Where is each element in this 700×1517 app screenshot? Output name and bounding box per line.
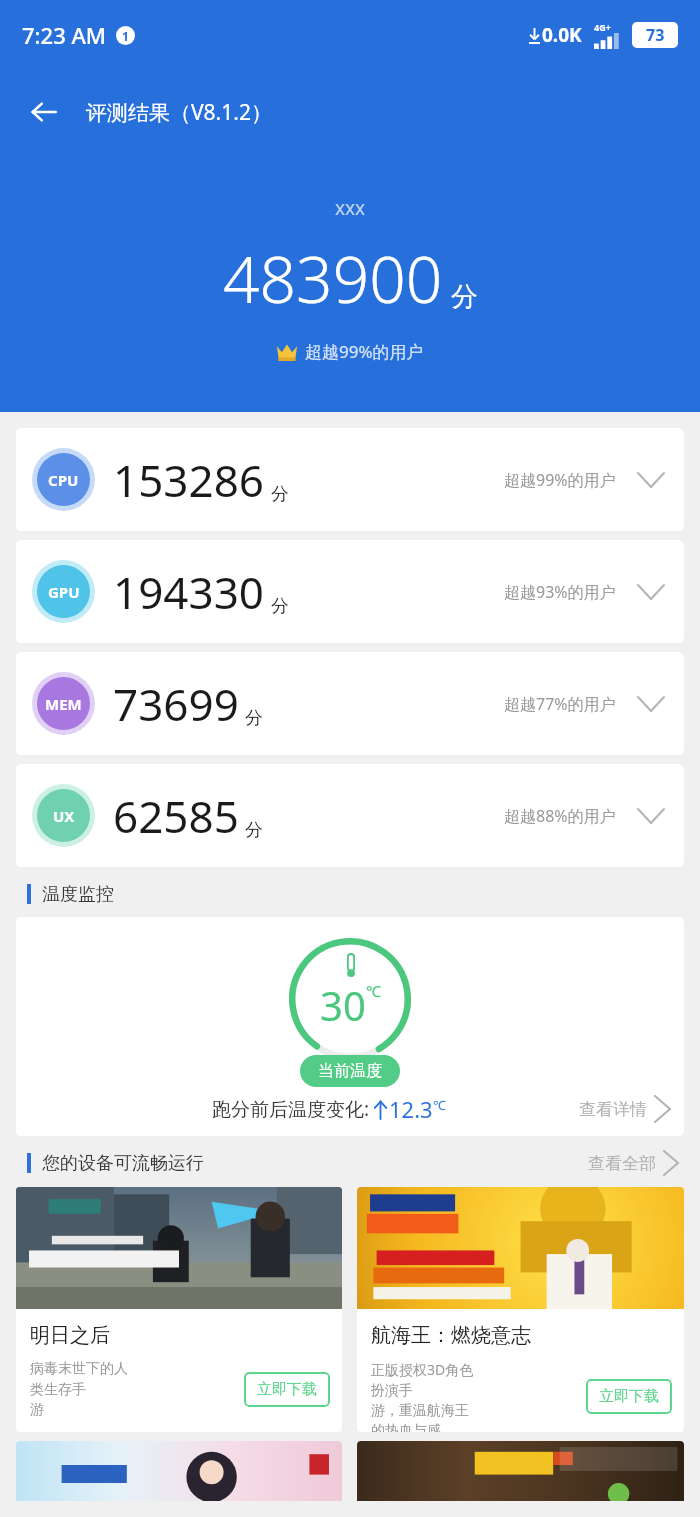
- staticText: 查看详情: [579, 1099, 647, 1120]
- staticText: 分: [245, 707, 263, 730]
- staticText: 分: [451, 280, 478, 314]
- staticText: ℃: [433, 1096, 446, 1114]
- staticText: 当前温度: [318, 1061, 382, 1081]
- staticText: 超越77%的用户: [504, 693, 616, 715]
- staticText: 分: [245, 819, 263, 842]
- button[interactable]: Expand: [634, 687, 668, 721]
- button[interactable]: 立即下载: [586, 1379, 672, 1414]
- staticText: 62585: [113, 786, 239, 846]
- staticText: 正版授权3D角色扮演手 游，重温航海王的热血与感: [371, 1360, 478, 1432]
- staticText: 航海王：燃烧意志: [371, 1323, 531, 1348]
- button[interactable]: CPU: [16, 428, 684, 531]
- staticText: 超越93%的用户: [504, 581, 616, 603]
- button[interactable]: 查看全部: [588, 1151, 678, 1175]
- staticText: 超越99%的用户: [305, 340, 424, 363]
- staticText: 7:23 AM: [22, 20, 107, 50]
- staticText: ℃: [366, 981, 381, 1001]
- button[interactable]: 查看详情: [579, 1096, 670, 1122]
- staticText: 立即下载: [599, 1387, 659, 1406]
- staticText: 跑分前后温度变化:: [212, 1096, 370, 1122]
- button[interactable]: [357, 1441, 684, 1501]
- staticText: CPU: [48, 470, 79, 490]
- button[interactable]: 立即下载: [244, 1372, 330, 1407]
- staticText: xxx: [335, 195, 366, 221]
- button[interactable]: Expand: [634, 799, 668, 833]
- button[interactable]: Expand: [634, 463, 668, 497]
- button[interactable]: GPU: [16, 540, 684, 643]
- staticText: 分: [271, 595, 289, 618]
- staticText: UX: [53, 806, 75, 826]
- staticText: 483900: [223, 235, 443, 322]
- staticText: 病毒末世下的人类生存手 游: [30, 1360, 137, 1418]
- button[interactable]: Back: [18, 86, 70, 138]
- button[interactable]: MEM: [16, 652, 684, 755]
- button[interactable]: [16, 1441, 342, 1501]
- staticText: 评测结果（V8.1.2）: [86, 98, 272, 127]
- staticText: 立即下载: [257, 1380, 317, 1399]
- staticText: 超越88%的用户: [504, 805, 616, 827]
- staticText: 温度监控: [42, 883, 114, 906]
- staticText: 0.0K: [542, 22, 582, 48]
- staticText: 30: [320, 978, 366, 1032]
- staticText: 您的设备可流畅运行: [42, 1152, 204, 1175]
- button[interactable]: 明日之后: [16, 1187, 342, 1432]
- staticText: MEM: [45, 694, 82, 714]
- staticText: GPU: [48, 582, 80, 602]
- staticText: 4G+: [594, 21, 611, 33]
- staticText: 73: [646, 24, 665, 46]
- staticText: 超越99%的用户: [504, 469, 616, 491]
- button[interactable]: Expand: [634, 575, 668, 609]
- staticText: 1: [122, 28, 129, 44]
- staticText: 73699: [113, 674, 239, 734]
- button[interactable]: 航海王：燃烧意志: [357, 1187, 684, 1432]
- staticText: 分: [271, 483, 289, 506]
- staticText: 明日之后: [30, 1323, 110, 1348]
- staticText: 查看全部: [588, 1153, 656, 1174]
- staticText: 12.3: [389, 1094, 433, 1124]
- staticText: 153286: [113, 450, 265, 510]
- staticText: 194330: [113, 562, 265, 622]
- button[interactable]: UX: [16, 764, 684, 867]
